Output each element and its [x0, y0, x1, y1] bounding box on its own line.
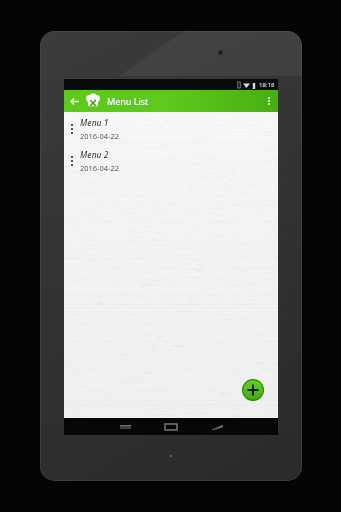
button[interactable]: Home — [155, 418, 187, 435]
staticText: Menu 2 — [80, 149, 109, 161]
button[interactable]: Navigate up — [64, 90, 85, 112]
button[interactable]: Back — [109, 418, 141, 435]
button[interactable]: Recent apps — [201, 418, 233, 435]
staticText: 2016-04-22 — [80, 131, 120, 141]
staticText: 2016-04-22 — [80, 163, 120, 173]
staticText: Menu 1 — [80, 117, 109, 129]
button[interactable]: Menu 1 — [64, 115, 278, 142]
button[interactable]: Add menu — [242, 379, 264, 401]
staticText: Menu List — [107, 95, 149, 107]
button[interactable]: More options — [260, 90, 278, 112]
staticText: 18:18 — [259, 81, 275, 89]
button[interactable]: Menu 2 — [64, 147, 278, 174]
